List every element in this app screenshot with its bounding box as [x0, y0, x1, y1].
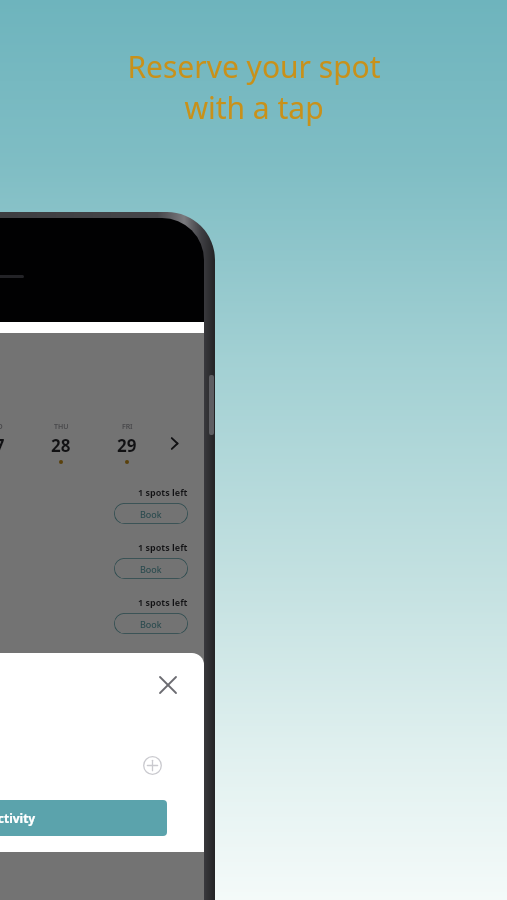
button[interactable]: Book: [114, 613, 188, 634]
staticText: THU: [54, 422, 69, 432]
button[interactable]: Next days: [160, 427, 188, 459]
button[interactable]: Book activity: [0, 800, 167, 836]
button[interactable]: Book: [114, 558, 188, 579]
staticText: Book activity: [0, 810, 36, 826]
button[interactable]: Book: [114, 503, 188, 524]
staticText: Reserve your spot: [127, 46, 381, 87]
button[interactable]: Book: [114, 668, 188, 689]
staticText: 29: [117, 434, 137, 457]
button[interactable]: Add person: [140, 753, 164, 777]
staticText: Book: [140, 618, 162, 630]
staticText: Book: [140, 508, 162, 520]
staticText: 27: [0, 434, 5, 457]
staticText: WED: [0, 422, 3, 432]
button[interactable]: Close: [152, 669, 184, 701]
staticText: FRI: [122, 422, 133, 432]
staticText: Book: [140, 563, 162, 575]
staticText: Book: [140, 673, 162, 685]
button[interactable]: THU: [28, 422, 94, 464]
button[interactable]: WED: [0, 422, 28, 464]
staticText: with a tap: [184, 87, 324, 128]
staticText: 1 spots left: [138, 651, 188, 663]
staticText: 1 spots left: [138, 596, 188, 608]
staticText: 1 spots left: [138, 541, 188, 553]
staticText: 28: [51, 434, 71, 457]
staticText: 1 spots left: [138, 486, 188, 498]
button[interactable]: FRI: [94, 422, 160, 464]
